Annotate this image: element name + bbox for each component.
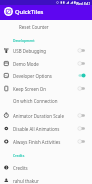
button[interactable]: Animator Duration Scale — [0, 109, 92, 122]
button[interactable]: Developer Options — [0, 69, 92, 82]
button[interactable]: Credits — [0, 161, 92, 174]
staticText: Keep Screen On — [13, 86, 47, 92]
staticText: Developer Options — [13, 73, 52, 79]
staticText: Animator Duration Scale — [13, 113, 64, 119]
staticText: Disable All Animations — [13, 126, 60, 132]
button[interactable]: USB Debugging — [0, 44, 92, 57]
staticText: Always Finish Activities — [13, 139, 61, 145]
staticText: Reset Counter — [19, 24, 49, 30]
button[interactable]: Always Finish Activities — [0, 135, 92, 148]
staticText: Wed 8:41 — [76, 1, 91, 5]
button[interactable]: rahul thakur — [0, 174, 92, 184]
staticText: Credits — [13, 153, 25, 158]
staticText: USB Debugging — [13, 48, 47, 54]
button[interactable]: Keep Screen On — [0, 82, 92, 95]
staticText: Credits — [13, 165, 28, 171]
button[interactable]: Disable All Animations — [0, 122, 92, 135]
staticText: rahul thakur — [13, 178, 39, 184]
button[interactable]: On which Connection — [0, 94, 92, 107]
staticText: QuickTiles — [15, 8, 44, 16]
staticText: Demo Mode — [13, 61, 39, 67]
button[interactable]: Demo Mode — [0, 57, 92, 70]
button[interactable]: App logo — [4, 7, 13, 16]
staticText: On which Connection — [13, 98, 58, 104]
staticText: Development — [13, 38, 35, 43]
button[interactable]: Reset Counter — [0, 20, 92, 33]
